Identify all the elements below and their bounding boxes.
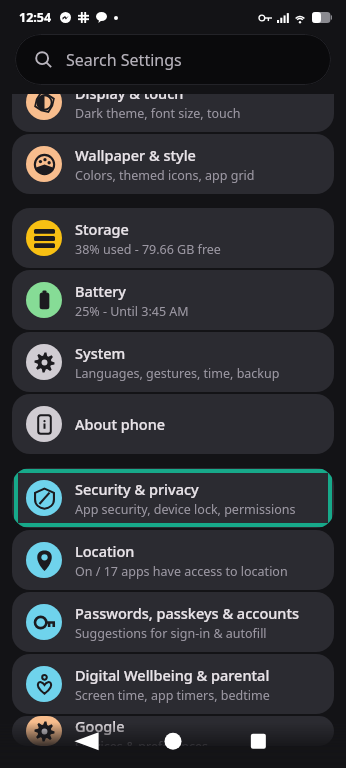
staticText: Screen time, app timers, bedtime schedul… xyxy=(75,687,322,704)
staticText: 25% - Until 3:45 AM xyxy=(75,303,189,320)
button[interactable]: Search Settings xyxy=(35,34,331,85)
staticText: 12:54 xyxy=(19,9,52,26)
staticText: Dark theme, font size, touch xyxy=(75,105,241,122)
staticText: System xyxy=(75,343,126,363)
staticText: Google xyxy=(75,716,125,736)
staticText: Storage xyxy=(75,219,129,239)
staticText: Location xyxy=(75,541,135,561)
staticText: Wallpaper & style xyxy=(75,145,196,165)
staticText: Display & touch xyxy=(75,94,184,103)
staticText: 38% used - 79.66 GB free xyxy=(75,241,221,258)
button[interactable]: System xyxy=(12,332,334,392)
staticText: Services & preferences xyxy=(75,738,209,746)
staticText: Languages, gestures, time, backup xyxy=(75,365,280,382)
staticText: Colors, themed icons, app grid xyxy=(75,167,255,184)
button[interactable]: Google xyxy=(12,716,334,746)
button[interactable]: Digital Wellbeing & parental controls xyxy=(12,654,334,714)
button[interactable]: Wallpaper & style xyxy=(12,134,334,194)
button[interactable]: Passwords, passkeys & accounts xyxy=(12,592,334,652)
button[interactable]: Storage xyxy=(12,208,334,268)
button[interactable]: About phone xyxy=(12,394,334,454)
button[interactable]: Display & touch xyxy=(12,94,334,132)
staticText: Suggestions for sign-in & autofill xyxy=(75,625,267,642)
staticText: App security, device lock, permissions xyxy=(75,501,296,518)
staticText: Security & privacy xyxy=(75,479,199,499)
button[interactable]: Location xyxy=(12,530,334,590)
staticText: Battery xyxy=(75,281,126,301)
button[interactable]: Security & privacy xyxy=(12,468,334,528)
button[interactable]: Back xyxy=(56,722,116,768)
staticText: About phone xyxy=(75,414,166,434)
staticText: Digital Wellbeing & parental controls xyxy=(75,665,322,685)
button[interactable]: Recent apps xyxy=(238,722,298,768)
button[interactable]: Home xyxy=(143,722,203,768)
button[interactable]: Battery xyxy=(12,270,334,330)
staticText: Search Settings xyxy=(66,49,182,71)
staticText: Passwords, passkeys & accounts xyxy=(75,603,300,623)
staticText: On / 17 apps have access to location xyxy=(75,563,288,580)
